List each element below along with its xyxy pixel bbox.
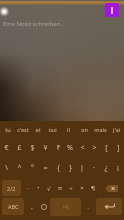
- staticText: {: [57, 163, 60, 173]
- staticText: ÷: [69, 184, 73, 192]
- button[interactable]: Enter: [96, 198, 122, 215]
- staticText: [: [105, 143, 108, 153]
- button[interactable]: ·: [88, 158, 100, 178]
- button[interactable]: Backspace: [98, 178, 124, 198]
- button[interactable]: =: [39, 158, 52, 178]
- button[interactable]: c'est: [15, 121, 30, 138]
- staticText: ¿: [104, 163, 108, 173]
- button[interactable]: tu: [0, 121, 15, 138]
- button[interactable]: ¡: [112, 158, 124, 178]
- button[interactable]: €: [0, 138, 13, 158]
- button[interactable]: il: [60, 121, 76, 138]
- staticText: π: [58, 184, 62, 192]
- staticText: £: [17, 143, 22, 153]
- button[interactable]: π: [54, 178, 65, 198]
- staticText: }: [69, 163, 72, 173]
- button[interactable]: •: [33, 178, 43, 198]
- staticText: °: [31, 163, 34, 173]
- button[interactable]: Space: [50, 198, 81, 216]
- staticText: ·: [93, 163, 95, 173]
- staticText: |: [80, 163, 84, 173]
- staticText: \: [5, 163, 8, 173]
- staticText: •: [37, 184, 40, 192]
- staticText: ABC: [8, 203, 19, 210]
- button[interactable]: ×: [76, 178, 87, 198]
- button[interactable]: ¶: [87, 178, 98, 198]
- button[interactable]: App icon: [105, 3, 119, 17]
- button[interactable]: \: [0, 158, 13, 178]
- button[interactable]: $: [26, 138, 39, 158]
- button[interactable]: £: [13, 138, 26, 158]
- staticText: <: [80, 143, 85, 153]
- button[interactable]: .: [81, 198, 95, 215]
- staticText: et: [35, 126, 41, 133]
- staticText: oui: [48, 126, 57, 133]
- button[interactable]: et: [30, 121, 45, 138]
- staticText: ·: [27, 184, 29, 192]
- staticText: €: [4, 143, 9, 153]
- staticText: ₹: [56, 143, 61, 153]
- button[interactable]: }: [64, 158, 76, 178]
- staticText: √: [47, 185, 51, 192]
- button[interactable]: √: [43, 178, 54, 198]
- button[interactable]: [: [100, 138, 112, 158]
- staticText: =: [43, 163, 48, 173]
- button[interactable]: °: [26, 158, 39, 178]
- button[interactable]: 2/2: [2, 180, 21, 196]
- staticText: mais: [94, 126, 107, 133]
- button[interactable]: {: [52, 158, 64, 178]
- staticText: tu: [5, 126, 11, 133]
- button[interactable]: ABC: [2, 198, 24, 215]
- staticText: c'est: [17, 126, 29, 133]
- staticText: >: [92, 143, 97, 153]
- button[interactable]: ·: [23, 178, 33, 198]
- staticText: %: [67, 143, 73, 153]
- staticText: Eine Notiz schreiben…: [3, 20, 66, 28]
- button[interactable]: ¿: [100, 158, 112, 178]
- staticText: ]: [117, 143, 120, 153]
- staticText: ¥: [43, 143, 48, 153]
- button[interactable]: j'ai: [108, 121, 124, 138]
- staticText: $: [30, 143, 35, 153]
- button[interactable]: mais: [92, 121, 108, 138]
- button[interactable]: ]: [112, 138, 124, 158]
- staticText: on: [81, 126, 88, 133]
- staticText: ×: [80, 184, 84, 192]
- button[interactable]: on: [76, 121, 92, 138]
- button[interactable]: >: [88, 138, 100, 158]
- staticText: ^: [17, 163, 22, 173]
- staticText: .: [87, 203, 89, 211]
- staticText: FR: [63, 204, 69, 211]
- button[interactable]: %: [64, 138, 76, 158]
- staticText: ,: [31, 203, 33, 211]
- staticText: ¡: [117, 163, 119, 173]
- button[interactable]: ÷: [65, 178, 76, 198]
- button[interactable]: |: [76, 158, 88, 178]
- button[interactable]: ^: [13, 158, 26, 178]
- staticText: 2/2: [7, 185, 16, 192]
- button[interactable]: oui: [45, 121, 60, 138]
- staticText: j'ai: [113, 126, 120, 133]
- staticText: il: [67, 126, 70, 133]
- button[interactable]: ,: [26, 198, 38, 215]
- button[interactable]: <: [76, 138, 88, 158]
- button[interactable]: Emoji: [38, 198, 50, 215]
- button[interactable]: ¥: [39, 138, 52, 158]
- button[interactable]: ₹: [52, 138, 64, 158]
- staticText: ¶: [91, 184, 95, 192]
